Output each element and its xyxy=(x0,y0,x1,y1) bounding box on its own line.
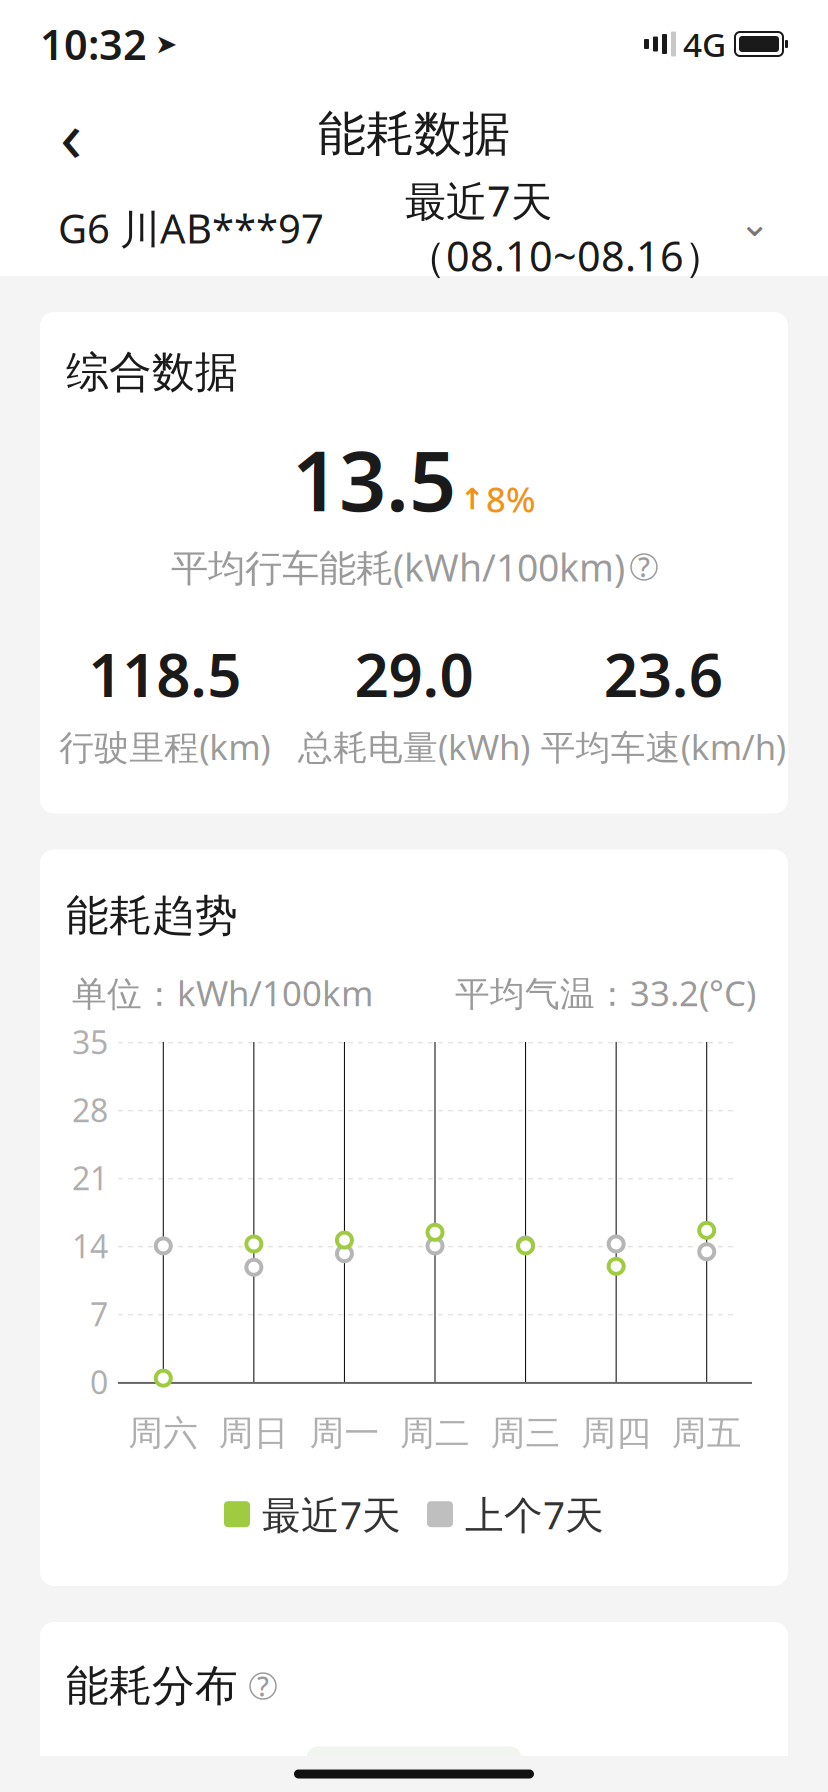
staticText: ➤ xyxy=(147,29,177,59)
staticText: ↑ xyxy=(460,482,485,516)
staticText: 24.2 xyxy=(117,1748,246,1792)
button[interactable]: Back xyxy=(36,99,106,169)
staticText: ⌄ xyxy=(739,202,770,244)
staticText: 4.8 xyxy=(601,1748,693,1792)
staticText: 14 xyxy=(72,1225,108,1267)
staticText: 行驶里程(km) xyxy=(59,723,270,769)
staticText: 周四 xyxy=(581,1412,651,1454)
staticText: 已回收 xyxy=(332,1768,440,1792)
button[interactable]: About energy distribution xyxy=(250,1673,276,1699)
staticText: 118.5 xyxy=(88,634,241,713)
staticText: 周日 xyxy=(219,1412,289,1454)
staticText: 单位：kWh/100km xyxy=(72,970,373,1016)
staticText: 7 xyxy=(90,1293,108,1335)
staticText: 4G xyxy=(683,22,726,66)
staticText: 8% xyxy=(486,476,536,522)
button[interactable]: About average driving consumption xyxy=(631,554,657,580)
staticText: 10:32 xyxy=(40,17,147,71)
staticText: 最近7天（08.10~08.16） xyxy=(405,173,725,283)
staticText: 能耗趋势 xyxy=(66,889,238,942)
staticText: 周六 xyxy=(128,1412,198,1454)
staticText: 平均行车能耗(kWh/100km) xyxy=(171,542,625,592)
staticText: 35 xyxy=(72,1021,108,1063)
staticText: 能耗数据 xyxy=(318,104,510,163)
staticText: 周二 xyxy=(400,1412,470,1454)
staticText: 上个7天 xyxy=(465,1488,604,1540)
staticText: 综合数据 xyxy=(66,346,238,398)
staticText: 13.5 xyxy=(292,424,456,534)
button[interactable]: 最近7天（08.10~08.16） xyxy=(405,173,770,283)
staticText: ? xyxy=(638,549,650,585)
staticText: ? xyxy=(257,1668,269,1704)
staticText: 0 xyxy=(90,1361,108,1403)
staticText: G6 川AB***97 xyxy=(58,201,324,255)
staticText: 周五 xyxy=(672,1412,742,1454)
staticText: 周三 xyxy=(491,1412,561,1454)
staticText: 能耗分布 xyxy=(66,1660,238,1712)
staticText: ‹ xyxy=(60,86,82,182)
staticText: 总耗电量(kWh) xyxy=(298,723,530,769)
staticText: 平均车速(km/h) xyxy=(541,723,786,769)
staticText: 最近7天 xyxy=(262,1488,401,1540)
staticText: 21 xyxy=(72,1157,108,1199)
staticText: 平均气温：33.2(°C) xyxy=(455,970,756,1016)
staticText: 29.0 xyxy=(354,634,473,713)
staticText: 28 xyxy=(72,1089,108,1131)
staticText: 周一 xyxy=(309,1412,379,1454)
staticText: 23.6 xyxy=(604,634,723,713)
